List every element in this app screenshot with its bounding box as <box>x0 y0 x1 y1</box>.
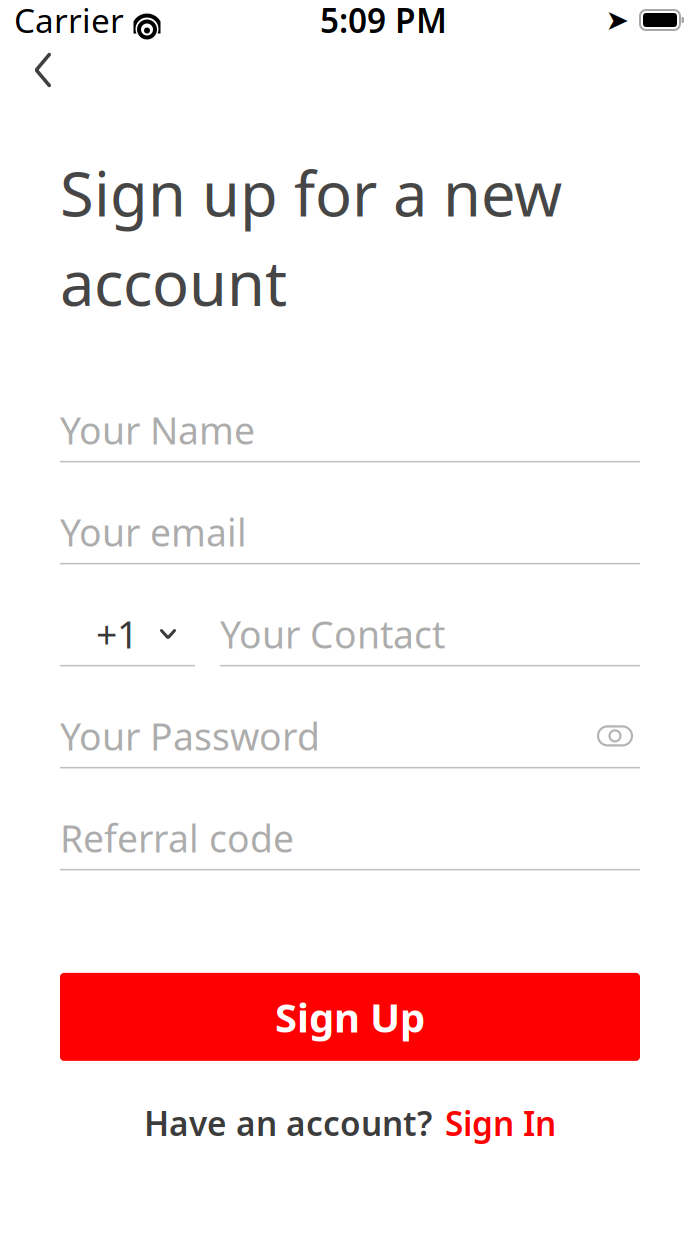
staticText: Referral code <box>60 813 294 863</box>
staticText: ➤ <box>605 4 628 36</box>
button[interactable]: Sign Up <box>60 973 640 1061</box>
button[interactable]: Have an account? <box>144 1093 556 1153</box>
staticText: Your Contact <box>220 609 445 659</box>
staticText: Carrier <box>14 0 124 42</box>
button[interactable]: Show password <box>590 711 640 761</box>
staticText: Have an account? <box>144 1101 432 1145</box>
staticText: Your Name <box>60 405 255 455</box>
staticText: Sign In <box>445 1101 556 1145</box>
staticText: Sign Up <box>275 990 425 1043</box>
staticText: account <box>60 241 287 323</box>
staticText: +1 <box>96 609 138 659</box>
button[interactable]: Select country code <box>60 603 195 666</box>
staticText: 5:09 PM <box>320 0 447 42</box>
staticText: Sign up for a new <box>60 152 562 233</box>
staticText: Your email <box>60 507 247 557</box>
button[interactable]: Back <box>12 40 74 100</box>
staticText: Your Password <box>60 711 320 761</box>
